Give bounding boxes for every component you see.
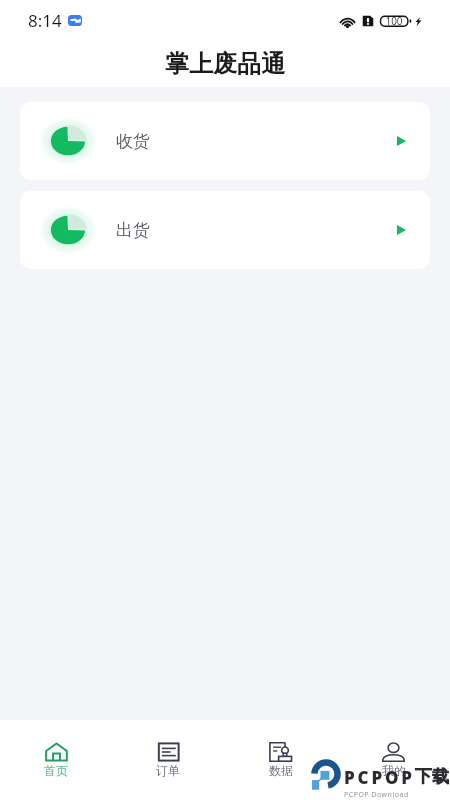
staticText: 出货 — [116, 220, 150, 241]
button[interactable]: 我的 — [337, 720, 450, 800]
staticText: 100 — [381, 14, 407, 28]
staticText: 收货 — [116, 131, 150, 152]
button[interactable]: 首页 — [0, 720, 112, 800]
button[interactable]: 订单 — [112, 720, 224, 800]
staticText: 掌上废品通 — [165, 49, 285, 79]
staticText: PCPOP Download — [344, 790, 409, 800]
staticText: PCPOP — [344, 766, 415, 789]
button[interactable]: 收货 — [20, 102, 430, 180]
staticText: 8:14 — [28, 9, 62, 32]
button[interactable]: 出货 — [20, 191, 430, 269]
button[interactable]: 数据 — [224, 720, 337, 800]
staticText: 订单 — [156, 763, 180, 778]
staticText: 首页 — [44, 763, 68, 778]
staticText: 我的 — [382, 763, 406, 778]
staticText: 下载 — [415, 766, 449, 787]
staticText: 数据 — [269, 763, 293, 778]
